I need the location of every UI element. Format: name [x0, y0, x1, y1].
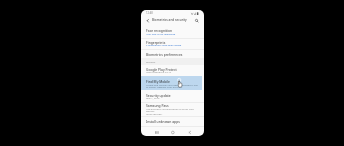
staticText: 3 fingerprints have been added	[146, 43, 182, 46]
button[interactable]: Back	[186, 128, 194, 136]
staticText: Your face is not registered	[146, 32, 176, 35]
staticText: Security update	[146, 93, 171, 97]
staticText: Samsung Pass	[146, 103, 169, 107]
button[interactable]: Search	[193, 17, 200, 24]
staticText: Fingerprints	[146, 40, 166, 44]
staticText: 12:48	[146, 11, 153, 15]
staticText: Biometrics preferences	[146, 52, 183, 56]
button[interactable]: Face recognition	[141, 25, 204, 38]
button[interactable]: Fingerprints	[141, 38, 204, 49]
staticText: Find My Mobile	[146, 79, 170, 83]
staticText: May 1, 2019	[146, 96, 160, 99]
staticText: Install unknown apps	[146, 119, 180, 123]
button[interactable]: Security update	[141, 90, 204, 102]
button[interactable]: Navigate up	[144, 17, 151, 24]
staticText: Apps scanned at 07:14	[146, 70, 172, 73]
staticText: Security	[146, 60, 156, 63]
button[interactable]: Find My Mobile	[141, 76, 204, 90]
staticText: Biometrics and security	[152, 18, 187, 22]
staticText: Use biometric authentication to verify y…	[146, 107, 199, 116]
staticText: Google Play Protect	[146, 67, 177, 71]
button[interactable]: Biometrics preferences	[141, 49, 204, 58]
staticText: Locate and control your device remotely …	[146, 83, 198, 89]
button[interactable]: Google Play Protect	[141, 65, 204, 76]
button[interactable]: Samsung Pass	[141, 102, 204, 116]
button[interactable]: Install unknown apps	[141, 116, 204, 126]
button[interactable]: Recent apps	[153, 128, 161, 136]
button[interactable]: Home	[169, 128, 177, 136]
staticText: Face recognition	[146, 28, 173, 32]
